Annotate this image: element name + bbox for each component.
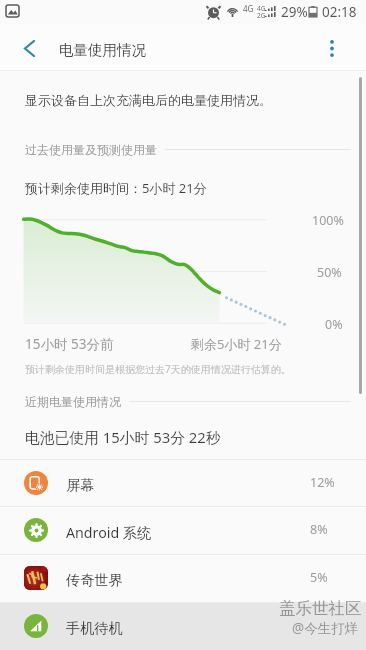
staticText: 屏幕 bbox=[66, 476, 95, 494]
staticText: 50% bbox=[317, 264, 342, 281]
staticText: 预计剩余使用时间：5小时 21分 bbox=[25, 179, 207, 197]
staticText: 2G bbox=[257, 11, 266, 20]
staticText: 4G bbox=[257, 4, 266, 13]
button[interactable]: 手机待机 bbox=[0, 602, 366, 650]
button[interactable]: More options bbox=[320, 24, 348, 71]
staticText: 盖乐世社区 bbox=[279, 598, 362, 619]
staticText: 近期电量使用情况 bbox=[25, 394, 121, 409]
staticText: 电量使用情况 bbox=[59, 41, 146, 59]
staticText: 电池已使用 15小时 53分 22秒 bbox=[25, 427, 221, 447]
button[interactable]: Back bbox=[0, 24, 52, 71]
staticText: 过去使用量及预测使用量 bbox=[25, 142, 157, 157]
staticText: 8% bbox=[310, 521, 328, 538]
staticText: 0% bbox=[325, 316, 343, 333]
staticText: 29% bbox=[281, 3, 308, 21]
button[interactable]: 屏幕 bbox=[0, 459, 366, 507]
button[interactable]: 传奇世界 bbox=[0, 554, 366, 602]
staticText: 预计剩余使用时间是根据您过去7天的使用情况进行估算的。 bbox=[25, 362, 291, 376]
staticText: 传奇世界 bbox=[66, 571, 123, 589]
staticText: 显示设备自上次充满电后的电量使用情况。 bbox=[25, 92, 272, 108]
staticText: 5% bbox=[310, 569, 328, 586]
button[interactable]: Android 系统 bbox=[0, 506, 366, 554]
staticText: 02:18 bbox=[322, 3, 357, 21]
staticText: 100% bbox=[312, 212, 344, 229]
staticText: 手机待机 bbox=[66, 619, 123, 637]
staticText: 12% bbox=[310, 474, 335, 491]
staticText: 剩余5小时 21分 bbox=[191, 335, 282, 353]
staticText: Android 系统 bbox=[66, 523, 152, 542]
staticText: @今生打烊 bbox=[292, 619, 359, 637]
staticText: 15小时 53分前 bbox=[25, 335, 114, 353]
staticText: 4G bbox=[243, 3, 254, 14]
